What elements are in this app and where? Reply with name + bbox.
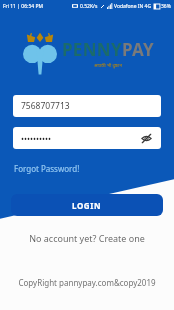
staticText: Forgot Password!	[14, 163, 80, 174]
staticText: LOGIN	[72, 200, 102, 211]
button[interactable]: 7568707713	[13, 95, 161, 117]
staticText: ••••••••••	[21, 133, 52, 144]
staticText: Vodafone IN 4G	[114, 3, 152, 10]
button[interactable]: LOGIN	[11, 194, 163, 216]
staticText: आपकी भी दुकान	[94, 62, 122, 68]
staticText: 7568707713	[21, 100, 70, 112]
staticText: 36%	[161, 3, 171, 10]
staticText: PENNY	[62, 38, 122, 61]
button[interactable]: Forgot Password!	[13, 161, 81, 176]
staticText: PAY	[122, 38, 154, 61]
button[interactable]: Toggle password visibility	[139, 131, 153, 145]
staticText: 0.52K/s	[80, 3, 98, 10]
staticText: Fri 11 | 06:54 PM	[3, 3, 43, 10]
button[interactable]: No account yet? Create one	[0, 230, 174, 246]
staticText: No account yet? Create one	[29, 232, 145, 244]
staticText: CopyRight pannypay.com&copy2019	[18, 277, 156, 288]
button[interactable]: ••••••••••	[13, 127, 161, 149]
